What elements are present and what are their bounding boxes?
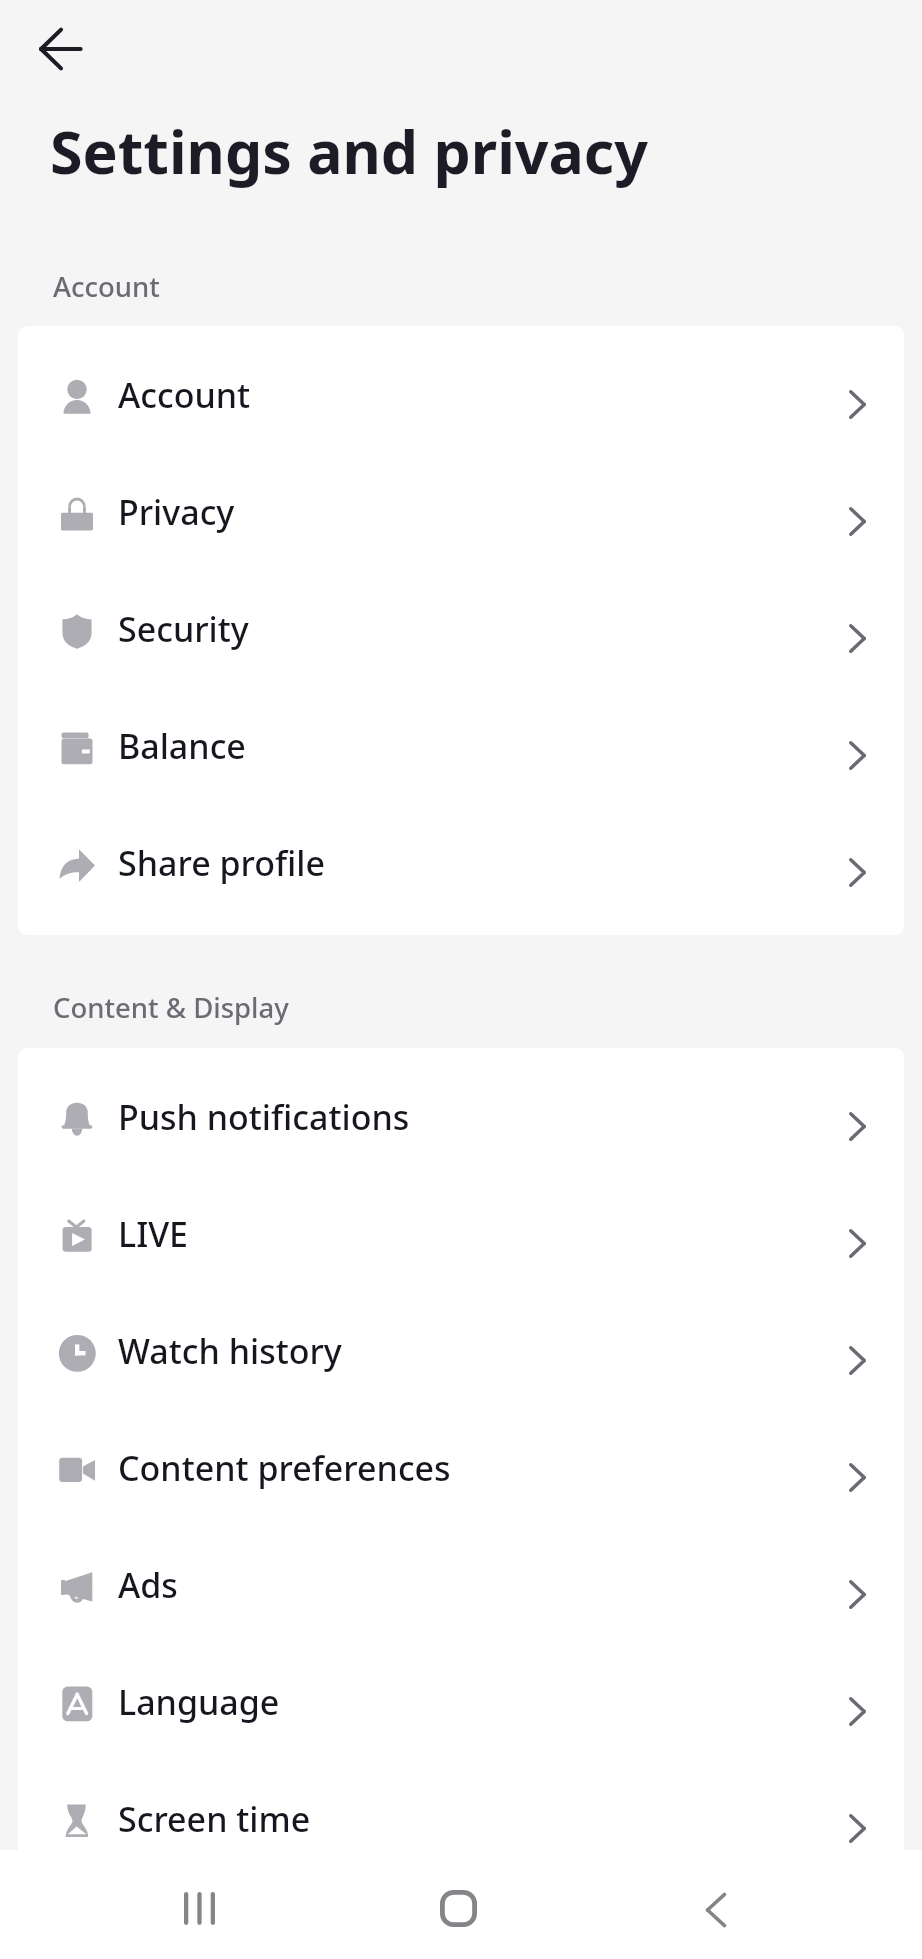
button[interactable]: Balance	[18, 689, 904, 806]
staticText: Account	[118, 372, 251, 418]
button[interactable]: LIVE	[18, 1177, 904, 1294]
button[interactable]: Watch history	[18, 1294, 904, 1411]
button[interactable]: Push notifications	[18, 1060, 904, 1177]
staticText: Security	[118, 606, 249, 652]
staticText: Ads	[118, 1562, 178, 1608]
staticText: Balance	[118, 723, 246, 769]
staticText: Content & Display	[53, 989, 289, 1026]
staticText: Account	[53, 268, 160, 305]
button[interactable]: Language	[18, 1645, 904, 1762]
button[interactable]: Back	[21, 10, 99, 88]
button[interactable]: Content preferences	[18, 1411, 904, 1528]
button[interactable]: Home	[418, 1868, 498, 1948]
staticText: Screen time	[118, 1796, 311, 1842]
staticText: Privacy	[118, 489, 235, 535]
staticText: LIVE	[118, 1211, 189, 1257]
staticText: Watch history	[118, 1328, 342, 1374]
staticText: Share profile	[118, 840, 326, 886]
button[interactable]: Security	[18, 572, 904, 689]
staticText: Push notifications	[118, 1094, 410, 1140]
button[interactable]: Share profile	[18, 806, 904, 923]
button[interactable]: Back	[675, 1870, 755, 1950]
button[interactable]: Privacy	[18, 455, 904, 572]
button[interactable]: Ads	[18, 1528, 904, 1645]
staticText: Content preferences	[118, 1445, 451, 1491]
button[interactable]: Recent apps	[159, 1868, 239, 1948]
staticText: Settings and privacy	[50, 111, 648, 191]
button[interactable]: Account	[18, 338, 904, 455]
button[interactable]: Screen time	[18, 1762, 904, 1879]
staticText: Language	[118, 1679, 280, 1725]
